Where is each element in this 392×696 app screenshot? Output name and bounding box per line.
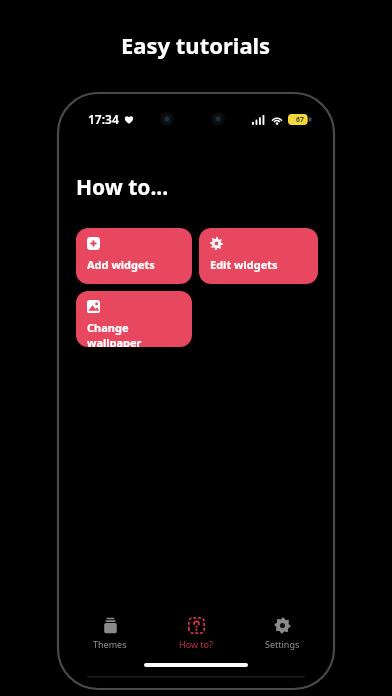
staticText: Add widgets	[87, 257, 155, 272]
button[interactable]: Themes	[74, 615, 146, 652]
button[interactable]: Add widgets	[76, 228, 192, 284]
staticText: How to...	[76, 173, 169, 202]
staticText: Edit widgets	[210, 257, 278, 272]
staticText: 67	[296, 115, 305, 125]
button[interactable]: Edit widgets	[199, 228, 318, 284]
button[interactable]: Settings	[246, 615, 318, 652]
staticText: Easy tutorials	[121, 30, 271, 60]
staticText: Themes	[93, 638, 127, 650]
button[interactable]: How to?	[160, 615, 232, 652]
staticText: 17:34	[88, 111, 119, 127]
staticText: Settings	[265, 638, 300, 650]
staticText: Change wallpaper	[87, 320, 184, 347]
button[interactable]: Change wallpaper	[76, 291, 192, 347]
staticText: How to?	[179, 638, 213, 650]
